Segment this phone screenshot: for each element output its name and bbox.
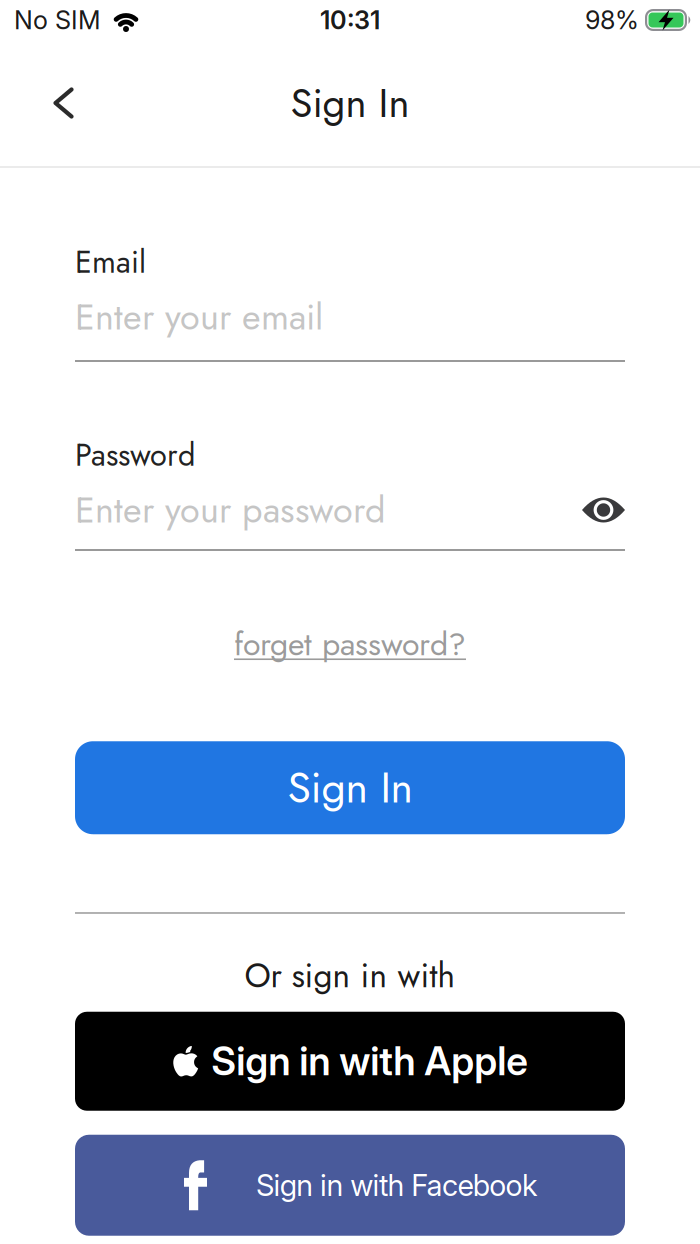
staticText: Sign In — [287, 757, 412, 819]
staticText: Password — [75, 433, 195, 477]
staticText: forget password? — [234, 621, 466, 667]
button[interactable]: Sign in with Facebook — [75, 1135, 625, 1236]
staticText: 10:31 — [320, 5, 380, 35]
staticText: 98% — [585, 5, 639, 35]
staticText: Email — [75, 240, 146, 284]
button[interactable] — [582, 495, 625, 525]
staticText: Sign in with Facebook — [256, 1168, 538, 1202]
staticText: Sign in with Apple — [211, 1038, 528, 1084]
staticText: Enter your email — [75, 291, 323, 343]
staticText: Enter your password — [75, 484, 386, 536]
button[interactable]: forget password? — [234, 621, 466, 667]
staticText: Or sign in with — [244, 952, 455, 1000]
staticText: Sign In — [290, 74, 409, 132]
button[interactable]: Sign In — [75, 741, 625, 834]
staticText: No SIM — [14, 5, 101, 35]
button[interactable]: Sign in with Apple — [75, 1012, 625, 1111]
button[interactable] — [0, 87, 94, 118]
